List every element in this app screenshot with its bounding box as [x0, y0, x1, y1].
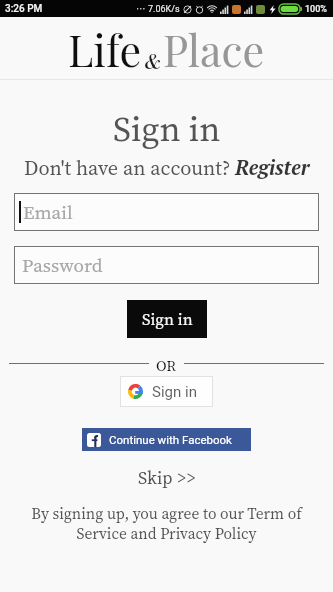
- staticText: Life: [68, 20, 142, 75]
- staticText: By signing up, you agree to our Term of …: [18, 503, 315, 545]
- staticText: Email: [23, 199, 73, 225]
- staticText: Sign in: [152, 383, 197, 401]
- button[interactable]: Password: [14, 246, 319, 284]
- staticText: OR: [156, 355, 177, 371]
- staticText: 3:26 PM: [5, 3, 43, 15]
- button[interactable]: Email: [14, 193, 319, 231]
- staticText: ⋯: [136, 3, 146, 15]
- staticText: &: [144, 51, 161, 75]
- button[interactable]: Sign in: [127, 300, 207, 338]
- button[interactable]: Continue with Facebook: [82, 428, 251, 451]
- staticText: 100%: [305, 4, 327, 15]
- staticText: 7.06K/s: [148, 4, 180, 15]
- button[interactable]: Don't have an account? Register: [24, 154, 310, 182]
- button[interactable]: Sign in: [120, 376, 213, 407]
- staticText: Continue with Facebook: [109, 433, 232, 446]
- staticText: Sign in: [113, 105, 221, 153]
- staticText: Password: [22, 252, 103, 278]
- button[interactable]: Skip >>: [128, 463, 206, 492]
- staticText: Place: [163, 20, 265, 75]
- staticText: Sign in: [142, 308, 193, 331]
